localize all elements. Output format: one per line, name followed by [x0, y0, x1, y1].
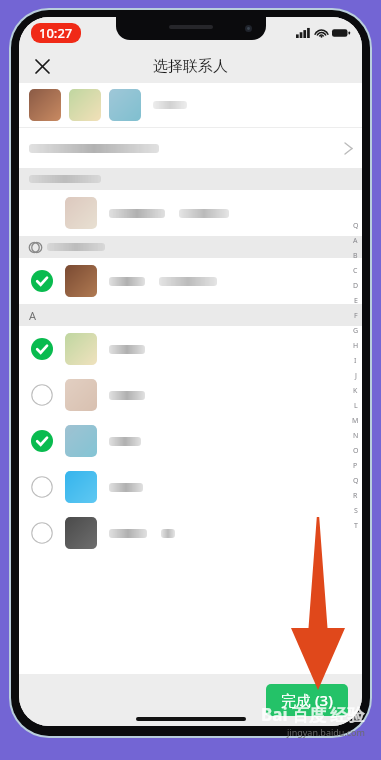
staticText: 完成 (3)	[281, 690, 333, 710]
staticText: A	[29, 308, 37, 323]
button[interactable]	[19, 258, 362, 304]
button[interactable]	[19, 190, 362, 236]
staticText: H	[353, 341, 359, 351]
staticText: 选择联系人	[153, 57, 228, 76]
staticText: I	[354, 356, 357, 366]
button[interactable]: Close	[27, 51, 57, 81]
staticText: B	[353, 251, 358, 261]
staticText: G	[353, 326, 359, 336]
staticText: F	[354, 311, 358, 321]
staticText: E	[354, 296, 358, 306]
button[interactable]	[19, 326, 362, 372]
staticText: T	[354, 521, 358, 531]
staticText: J	[355, 371, 357, 381]
button[interactable]	[19, 464, 362, 510]
staticText: Q	[353, 476, 359, 486]
staticText: N	[353, 431, 359, 441]
staticText: D	[353, 281, 359, 291]
staticText: A	[353, 236, 358, 246]
staticText: M	[352, 416, 359, 426]
staticText: C	[353, 266, 358, 276]
staticText: P	[353, 461, 358, 471]
button[interactable]: 完成 (3)	[266, 684, 348, 716]
button[interactable]	[19, 372, 362, 418]
staticText: jingyan.baidu.com	[287, 726, 365, 738]
staticText: K	[353, 386, 358, 396]
staticText: Bai 百度 经验	[261, 703, 365, 726]
staticText: 10:27	[39, 24, 73, 42]
staticText: R	[353, 491, 358, 501]
staticText: S	[354, 506, 358, 516]
button[interactable]	[19, 128, 362, 168]
button[interactable]	[19, 418, 362, 464]
staticText: O	[353, 446, 359, 456]
staticText: L	[354, 401, 358, 411]
staticText: Q	[353, 221, 359, 231]
button[interactable]	[19, 510, 362, 556]
